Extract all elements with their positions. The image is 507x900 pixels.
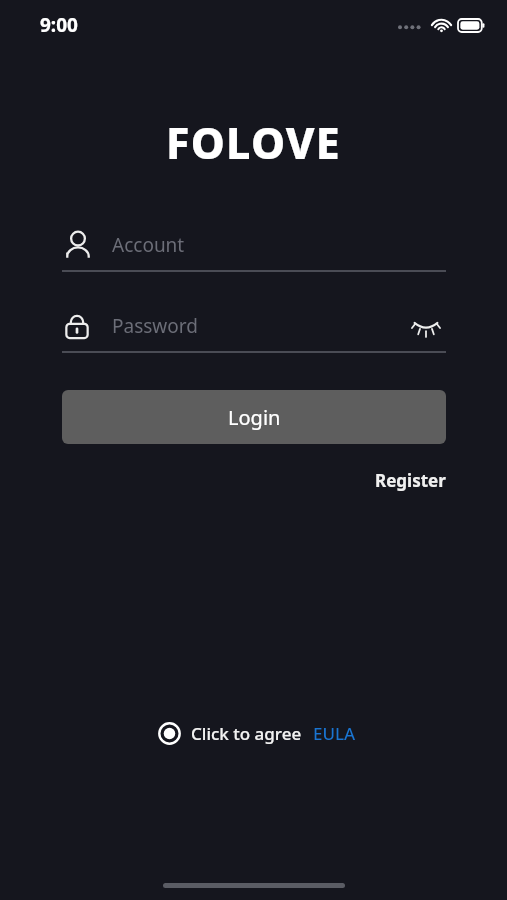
button[interactable]: Show password	[406, 306, 446, 346]
staticText: Login	[228, 404, 281, 431]
button[interactable]: Register	[350, 464, 446, 496]
staticText: Register	[375, 469, 446, 492]
staticText: FOLOVE	[0, 113, 507, 172]
button[interactable]: Click to agree	[152, 716, 302, 750]
button[interactable]: Login	[62, 390, 446, 444]
button[interactable]: EULA	[313, 722, 356, 745]
button[interactable]: Password	[62, 305, 446, 353]
staticText: EULA	[313, 722, 356, 745]
staticText: Password	[112, 313, 198, 339]
staticText: Click to agree	[191, 722, 302, 745]
staticText: 9:00	[40, 12, 78, 38]
button[interactable]: Account	[62, 224, 446, 272]
staticText: Account	[112, 232, 185, 258]
